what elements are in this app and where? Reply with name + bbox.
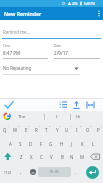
staticText: H xyxy=(60,141,64,147)
button[interactable]: I xyxy=(44,111,70,123)
staticText: I xyxy=(76,127,78,133)
staticText: Hi xyxy=(76,114,81,120)
staticText: G xyxy=(49,141,53,147)
staticText: 43% xyxy=(72,2,78,6)
button[interactable]: Hi xyxy=(70,111,86,123)
staticText: T xyxy=(45,127,48,133)
button[interactable]: A xyxy=(5,137,15,151)
staticText: S xyxy=(19,141,22,147)
staticText: 8:47 PM xyxy=(3,50,21,56)
button[interactable] xyxy=(88,150,103,164)
staticText: V xyxy=(50,154,53,160)
staticText: D xyxy=(29,141,33,147)
staticText: Remind me... xyxy=(3,29,31,35)
staticText: F xyxy=(40,141,43,147)
button[interactable]: X xyxy=(26,150,36,164)
staticText: P xyxy=(97,127,100,133)
staticText: No Repeating xyxy=(3,65,32,71)
staticText: 7 xyxy=(70,124,72,127)
staticText: New Reminder xyxy=(4,10,42,17)
staticText: E xyxy=(25,127,28,133)
staticText: Time xyxy=(3,44,11,48)
button[interactable] xyxy=(86,166,99,179)
button[interactable]: N xyxy=(67,150,77,164)
staticText: K xyxy=(81,141,84,147)
button[interactable]: Z xyxy=(16,150,26,164)
staticText: 8 xyxy=(80,124,82,127)
staticText: 2/9/17 xyxy=(54,50,68,56)
staticText: U xyxy=(65,127,69,133)
button[interactable]: . xyxy=(71,164,81,180)
button[interactable]: FR - EN xyxy=(38,167,71,177)
button[interactable]: C xyxy=(36,150,46,164)
button[interactable]: No Repeating xyxy=(0,62,85,75)
button[interactable] xyxy=(58,99,69,110)
staticText: 3 xyxy=(28,124,30,127)
staticText: Z xyxy=(20,154,23,160)
staticText: 2 xyxy=(18,124,20,127)
button[interactable]: The xyxy=(14,111,30,123)
button[interactable]: W xyxy=(10,123,20,137)
button[interactable]: H xyxy=(57,137,67,151)
button[interactable] xyxy=(26,164,38,180)
staticText: The xyxy=(18,114,26,120)
button[interactable]: T xyxy=(41,123,51,137)
button[interactable]: V xyxy=(46,150,56,164)
staticText: W xyxy=(13,127,18,133)
staticText: 9 xyxy=(90,124,92,127)
staticText: 4 xyxy=(39,124,41,127)
button[interactable]: I xyxy=(72,123,82,137)
staticText: J xyxy=(71,141,73,147)
staticText: 5 xyxy=(49,124,51,127)
button[interactable]: D xyxy=(26,137,36,151)
button[interactable] xyxy=(95,7,103,20)
staticText: C xyxy=(40,154,43,160)
button[interactable]: F xyxy=(36,137,46,151)
button[interactable]: Q xyxy=(0,123,10,137)
button[interactable] xyxy=(2,111,14,123)
staticText: 0 xyxy=(101,124,103,127)
staticText: Y xyxy=(56,127,59,133)
staticText: ?123 xyxy=(4,170,12,175)
button[interactable]: Time xyxy=(0,42,50,60)
button[interactable] xyxy=(85,99,96,110)
button[interactable] xyxy=(0,150,16,164)
staticText: O xyxy=(86,127,90,133)
button[interactable]: P xyxy=(93,123,103,137)
button[interactable]: J xyxy=(67,137,77,151)
staticText: B xyxy=(61,154,64,160)
button[interactable]: Remind me... xyxy=(0,24,103,39)
button[interactable]: O xyxy=(83,123,93,137)
button[interactable]: B xyxy=(57,150,67,164)
button[interactable]: R xyxy=(31,123,41,137)
staticText: 6 xyxy=(59,124,61,127)
button[interactable]: U xyxy=(62,123,72,137)
button[interactable] xyxy=(71,99,82,110)
staticText: 1 xyxy=(8,124,10,127)
staticText: Q xyxy=(3,127,7,133)
button[interactable]: S xyxy=(15,137,25,151)
staticText: A xyxy=(9,141,12,147)
staticText: Date xyxy=(54,44,62,48)
button[interactable]: Y xyxy=(52,123,62,137)
button[interactable]: G xyxy=(46,137,56,151)
staticText: I xyxy=(56,114,58,120)
staticText: FR - EN xyxy=(50,170,59,174)
button[interactable]: ?123 xyxy=(0,164,16,180)
button[interactable]: K xyxy=(77,137,87,151)
staticText: , xyxy=(20,169,22,175)
staticText: 8:48 PM xyxy=(84,2,95,6)
staticText: R xyxy=(35,127,38,133)
staticText: X xyxy=(30,154,33,160)
staticText: . xyxy=(75,169,77,175)
button[interactable]: E xyxy=(21,123,31,137)
staticText: N xyxy=(70,154,74,160)
button[interactable]: L xyxy=(88,137,98,151)
staticText: L xyxy=(92,141,95,147)
button[interactable]: M xyxy=(77,150,87,164)
staticText: M xyxy=(80,154,84,160)
button[interactable] xyxy=(2,99,16,110)
button[interactable]: , xyxy=(16,164,26,180)
button[interactable]: Date xyxy=(52,42,103,60)
